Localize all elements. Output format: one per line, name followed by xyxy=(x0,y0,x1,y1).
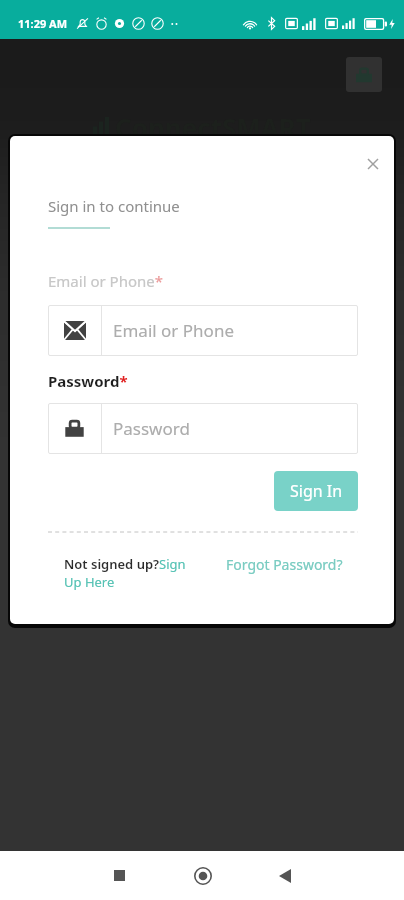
staticText: Email or Phone xyxy=(113,319,234,342)
staticText: Sign in to continue xyxy=(48,196,180,216)
button[interactable]: Email or Phone xyxy=(48,305,358,356)
button[interactable]: Not signed up?Sign Up Here xyxy=(64,555,196,591)
button[interactable]: Forgot Password? xyxy=(226,555,343,574)
button[interactable]: Recents xyxy=(102,851,136,900)
staticText: Password xyxy=(113,417,190,440)
button[interactable]: Password xyxy=(48,403,358,454)
button[interactable]: Close xyxy=(358,149,388,179)
button[interactable]: Lock xyxy=(346,57,382,92)
staticText: Email or Phone* xyxy=(48,271,164,291)
staticText: Sign In xyxy=(290,480,343,502)
button[interactable]: Sign In xyxy=(274,471,358,511)
staticText: ConnectSMART xyxy=(115,110,311,145)
staticText: Password* xyxy=(48,371,128,391)
button[interactable]: Back xyxy=(268,851,302,900)
staticText: 11:29 AM xyxy=(18,16,68,31)
button[interactable]: Home xyxy=(186,851,220,900)
